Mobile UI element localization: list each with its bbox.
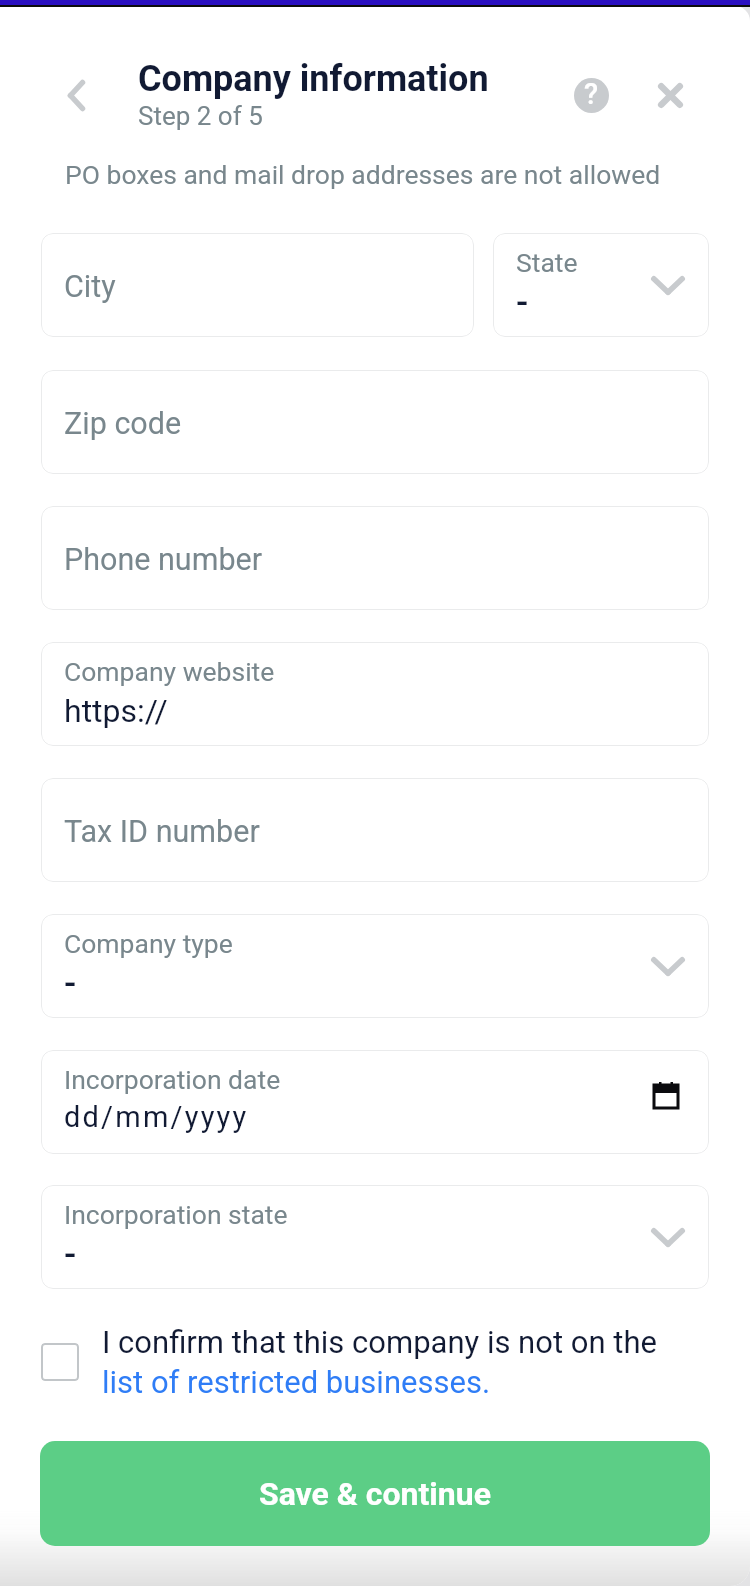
staticText: dd/mm/yyyy bbox=[64, 1100, 249, 1134]
staticText: Company type bbox=[64, 928, 233, 959]
staticText: list of restricted businesses. bbox=[102, 1364, 491, 1400]
staticText: State bbox=[516, 247, 578, 278]
staticText: - bbox=[64, 963, 77, 1005]
staticText: PO boxes and mail drop addresses are not… bbox=[65, 159, 661, 190]
staticText: Incorporation date bbox=[64, 1064, 281, 1095]
staticText: https:// bbox=[64, 692, 168, 730]
button[interactable]: Incorporation date bbox=[41, 1050, 709, 1154]
staticText: Incorporation state bbox=[64, 1199, 288, 1230]
button[interactable]: Incorporation state bbox=[41, 1185, 709, 1289]
staticText: Company website bbox=[64, 656, 275, 687]
staticText: Save & continue bbox=[259, 1475, 491, 1513]
button[interactable]: Close bbox=[634, 59, 706, 131]
button[interactable]: Zip code bbox=[41, 370, 709, 474]
staticText: I confirm that this company is not on th… bbox=[102, 1324, 657, 1360]
button[interactable]: Company type bbox=[41, 914, 709, 1018]
staticText: ? bbox=[584, 78, 599, 111]
button[interactable]: Save & continue bbox=[40, 1441, 710, 1546]
staticText: City bbox=[64, 269, 116, 305]
staticText: Step 2 of 5 bbox=[138, 101, 263, 131]
staticText: - bbox=[64, 1234, 77, 1276]
button[interactable]: I confirm that this company is not on th… bbox=[41, 1324, 709, 1362]
staticText: Tax ID number bbox=[64, 814, 260, 850]
button[interactable]: Back bbox=[40, 59, 112, 131]
staticText: Zip code bbox=[64, 406, 182, 442]
staticText: - bbox=[516, 282, 529, 324]
staticText: Phone number bbox=[64, 542, 263, 578]
button[interactable]: Help bbox=[555, 59, 627, 131]
staticText: Company information bbox=[138, 58, 489, 100]
button[interactable]: Phone number bbox=[41, 506, 709, 610]
button[interactable]: City bbox=[41, 233, 474, 337]
button[interactable]: Company website bbox=[41, 642, 709, 746]
button[interactable]: State bbox=[493, 233, 709, 337]
button[interactable]: Tax ID number bbox=[41, 778, 709, 882]
